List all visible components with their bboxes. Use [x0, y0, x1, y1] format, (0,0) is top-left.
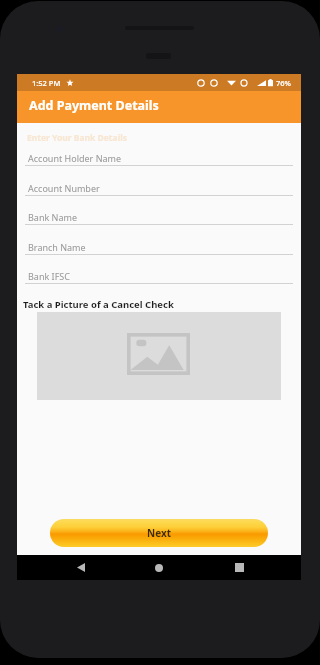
- button[interactable]: Next: [50, 519, 268, 547]
- button[interactable]: Back: [68, 555, 94, 580]
- staticText: Account Holder Name: [28, 152, 122, 164]
- button[interactable]: Take a picture of a cancelled cheque: [37, 312, 281, 400]
- staticText: 76%: [276, 78, 291, 88]
- button[interactable]: Home: [146, 555, 172, 580]
- staticText: 1:52 PM: [32, 78, 61, 88]
- button[interactable]: Branch Name: [25, 234, 293, 256]
- button[interactable]: Bank Name: [25, 204, 293, 226]
- staticText: Bank Name: [28, 211, 77, 223]
- staticText: Branch Name: [28, 241, 86, 253]
- staticText: Tack a Picture of a Cancel Check: [23, 298, 174, 311]
- button[interactable]: Recent apps: [226, 555, 252, 580]
- staticText: Bank IFSC: [28, 270, 70, 282]
- staticText: Account Number: [28, 182, 100, 194]
- staticText: Enter Your Bank Details: [27, 132, 127, 144]
- staticText: Add Payment Details: [29, 97, 159, 114]
- button[interactable]: Add Payment Details: [17, 91, 301, 123]
- button[interactable]: Account Holder Name: [25, 145, 293, 167]
- button[interactable]: Account Number: [25, 175, 293, 197]
- staticText: Next: [147, 526, 172, 540]
- button[interactable]: Bank IFSC: [25, 263, 293, 285]
